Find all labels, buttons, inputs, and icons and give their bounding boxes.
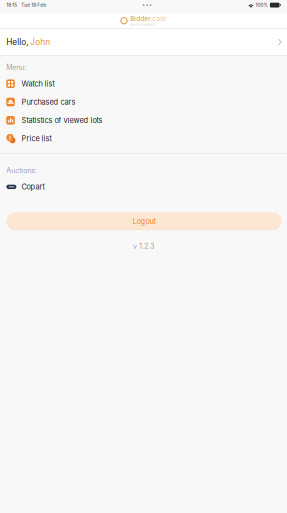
staticText: Bidder [130, 15, 150, 22]
button[interactable]: Purchased cars [0, 93, 287, 111]
staticText: Purchased cars [21, 97, 75, 106]
staticText: Menu: [6, 63, 26, 71]
button[interactable]: Copart [0, 178, 287, 196]
button[interactable]: Watch list [0, 74, 287, 93]
staticText: auction assistant [130, 23, 155, 26]
staticText: Hello, [6, 37, 30, 47]
button[interactable]: Statistics of viewed lots [0, 111, 287, 129]
staticText: Copart [21, 182, 44, 191]
staticText: Logout [132, 217, 155, 226]
staticText: Watch list [21, 79, 54, 88]
staticText: Price list [21, 134, 51, 143]
staticText: 18:15 [6, 2, 17, 8]
staticText: Statistics of viewed lots [21, 116, 102, 125]
staticText: 100% [255, 2, 268, 8]
staticText: .cool [150, 15, 166, 22]
staticText: John [30, 37, 50, 47]
staticText: Auctions: [6, 166, 37, 175]
button[interactable]: Logout [6, 212, 282, 230]
button[interactable]: Price list [0, 129, 287, 148]
button[interactable]: Hello, [0, 29, 287, 55]
staticText: Tue 18 Feb [21, 2, 46, 8]
staticText: v 1.2.3 [133, 242, 154, 250]
